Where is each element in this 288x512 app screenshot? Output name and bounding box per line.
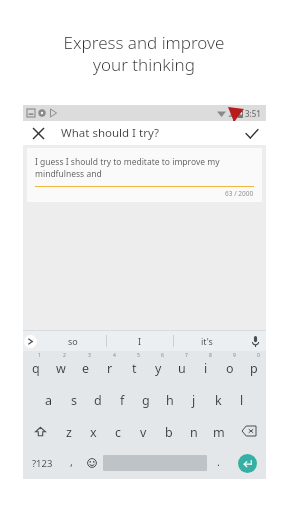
staticText: k [215,392,222,409]
button[interactable]: x [81,415,106,447]
staticText: What should I try? [61,125,159,141]
staticText: Express and improve your thinking [0,31,288,76]
button[interactable]: Period [207,447,229,479]
staticText: it's [201,335,213,347]
button[interactable]: Enter [238,454,257,473]
staticText: 7 [185,352,188,359]
button[interactable]: 0 [242,351,266,383]
staticText: x [90,424,97,441]
staticText: j [192,392,196,409]
staticText: I guess I should try to meditate to impr… [35,156,254,180]
button[interactable]: f [110,383,134,415]
staticText: ?123 [32,457,53,470]
button[interactable]: j [182,383,206,415]
staticText: t [132,360,137,377]
button[interactable]: z [57,415,81,447]
button[interactable]: I guess I should try to meditate to impr… [27,148,262,202]
staticText: 5 [137,352,140,359]
button[interactable]: n [181,415,206,447]
button[interactable]: k [206,383,230,415]
button[interactable]: I [107,331,173,351]
button[interactable]: 4 [98,351,122,383]
staticText: I [138,335,142,347]
button[interactable]: ?123 [23,447,61,479]
button[interactable]: 6 [146,351,170,383]
staticText: 63 / 2000 [225,189,254,198]
button[interactable]: d [86,383,110,415]
staticText: e [82,360,90,377]
button[interactable]: 5 [122,351,146,383]
button[interactable]: v [131,415,156,447]
button[interactable]: h [158,383,182,415]
button[interactable]: Emoji [81,447,103,479]
button[interactable]: a [36,383,61,415]
button[interactable]: s [61,383,86,415]
staticText: h [166,392,174,409]
staticText: b [165,424,173,441]
staticText: l [240,392,244,409]
button[interactable]: c [106,415,131,447]
staticText: 1 [38,352,41,359]
button[interactable]: Expand suggestions [23,334,37,348]
staticText: i [204,360,208,377]
button[interactable]: Voice input [244,331,266,351]
staticText: q [32,360,40,377]
button[interactable]: 7 [170,351,194,383]
staticText: y [155,360,162,377]
staticText: z [66,424,72,441]
staticText: 3 [88,352,91,359]
button[interactable]: so [39,331,106,351]
button[interactable]: Close [23,121,53,145]
button[interactable]: Comma [61,447,81,479]
staticText: w [56,360,66,377]
staticText: p [250,360,258,377]
staticText: 0 [257,352,260,359]
button[interactable]: 3 [73,351,98,383]
staticText: s [71,392,77,409]
button[interactable]: 9 [218,351,242,383]
button[interactable]: Save [238,121,266,145]
staticText: r [107,360,113,377]
staticText: m [213,424,225,441]
staticText: 9 [233,352,236,359]
staticText: 6 [161,352,164,359]
button[interactable]: 8 [194,351,218,383]
staticText: d [94,392,102,409]
button[interactable]: l [230,383,254,415]
button[interactable]: 2 [48,351,73,383]
button[interactable]: Backspace [231,415,266,447]
staticText: g [142,392,150,409]
staticText: 3:51 [245,108,261,119]
staticText: v [140,424,147,441]
staticText: , [70,454,73,469]
button[interactable]: b [156,415,181,447]
button[interactable]: it's [174,331,240,351]
staticText: o [226,360,234,377]
staticText: 4 [113,352,116,359]
staticText: 8 [209,352,212,359]
button[interactable]: 1 [23,351,48,383]
staticText: u [178,360,186,377]
staticText: n [190,424,198,441]
staticText: a [45,392,53,409]
button[interactable]: Shift [23,415,57,447]
staticText: so [68,335,78,347]
staticText: . [217,454,220,469]
staticText: f [120,392,125,409]
staticText: 2 [63,352,66,359]
button[interactable]: m [206,415,231,447]
button[interactable]: g [134,383,158,415]
staticText: c [115,424,122,441]
